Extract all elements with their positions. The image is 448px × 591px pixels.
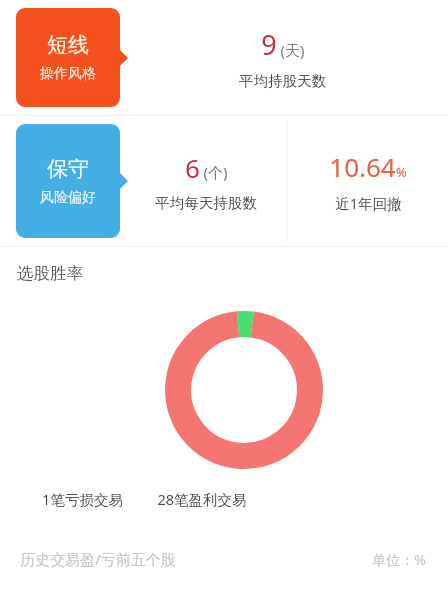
staticText: %: [396, 163, 407, 181]
staticText: 单位：%: [372, 550, 426, 569]
staticText: 6: [185, 150, 200, 185]
button[interactable]: 选股胜率 圆环图: [165, 311, 323, 469]
staticText: 短线: [47, 32, 89, 58]
staticText: 保守: [47, 156, 89, 182]
staticText: 选股胜率: [17, 263, 83, 284]
button[interactable]: 6: [128, 116, 287, 246]
button[interactable]: 9: [128, 0, 448, 115]
staticText: 风险偏好: [40, 189, 96, 207]
staticText: 9: [261, 26, 277, 63]
staticText: (天): [280, 40, 305, 60]
staticText: 28笔盈利交易: [157, 489, 247, 509]
staticText: 10.64: [329, 149, 396, 184]
staticText: 1笔亏损交易: [42, 489, 123, 509]
staticText: 近1年回撤: [335, 193, 402, 213]
staticText: 平均每天持股数: [155, 194, 257, 212]
staticText: 操作风格: [40, 65, 96, 83]
staticText: 平均持股天数: [239, 72, 326, 90]
button[interactable]: 短线: [16, 8, 128, 107]
staticText: 历史交易盈/亏前五个股: [20, 549, 176, 569]
button[interactable]: 10.64: [288, 116, 448, 246]
button[interactable]: 保守: [16, 124, 128, 238]
staticText: (个): [203, 162, 228, 182]
